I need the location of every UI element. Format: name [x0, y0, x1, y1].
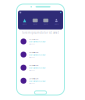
staticText: lorem ipsum dolor sit amet	[22, 31, 59, 34]
staticText: dolor sit amet consectetur	[29, 41, 46, 43]
staticText: ab cd	[33, 23, 37, 25]
staticText: elit sed do	[29, 83, 35, 84]
staticText: Lorem ipsum	[29, 65, 38, 66]
staticText: ab cd	[44, 23, 48, 25]
staticText: Lorem ipsum	[29, 78, 38, 80]
staticText: ab cd	[23, 23, 27, 25]
staticText: elit sed do	[29, 43, 35, 45]
staticText: dolor sit amet consectetur	[29, 67, 46, 69]
staticText: elit sed do	[29, 70, 35, 71]
staticText: elit sed do	[29, 56, 35, 58]
staticText: Lorem ipsum	[29, 38, 38, 40]
staticText: dolor sit amet consectetur	[29, 54, 46, 56]
staticText: Lorem ipsum	[29, 52, 38, 53]
staticText: dolor sit amet consectetur	[29, 80, 46, 82]
staticText: ab cd	[54, 23, 58, 25]
